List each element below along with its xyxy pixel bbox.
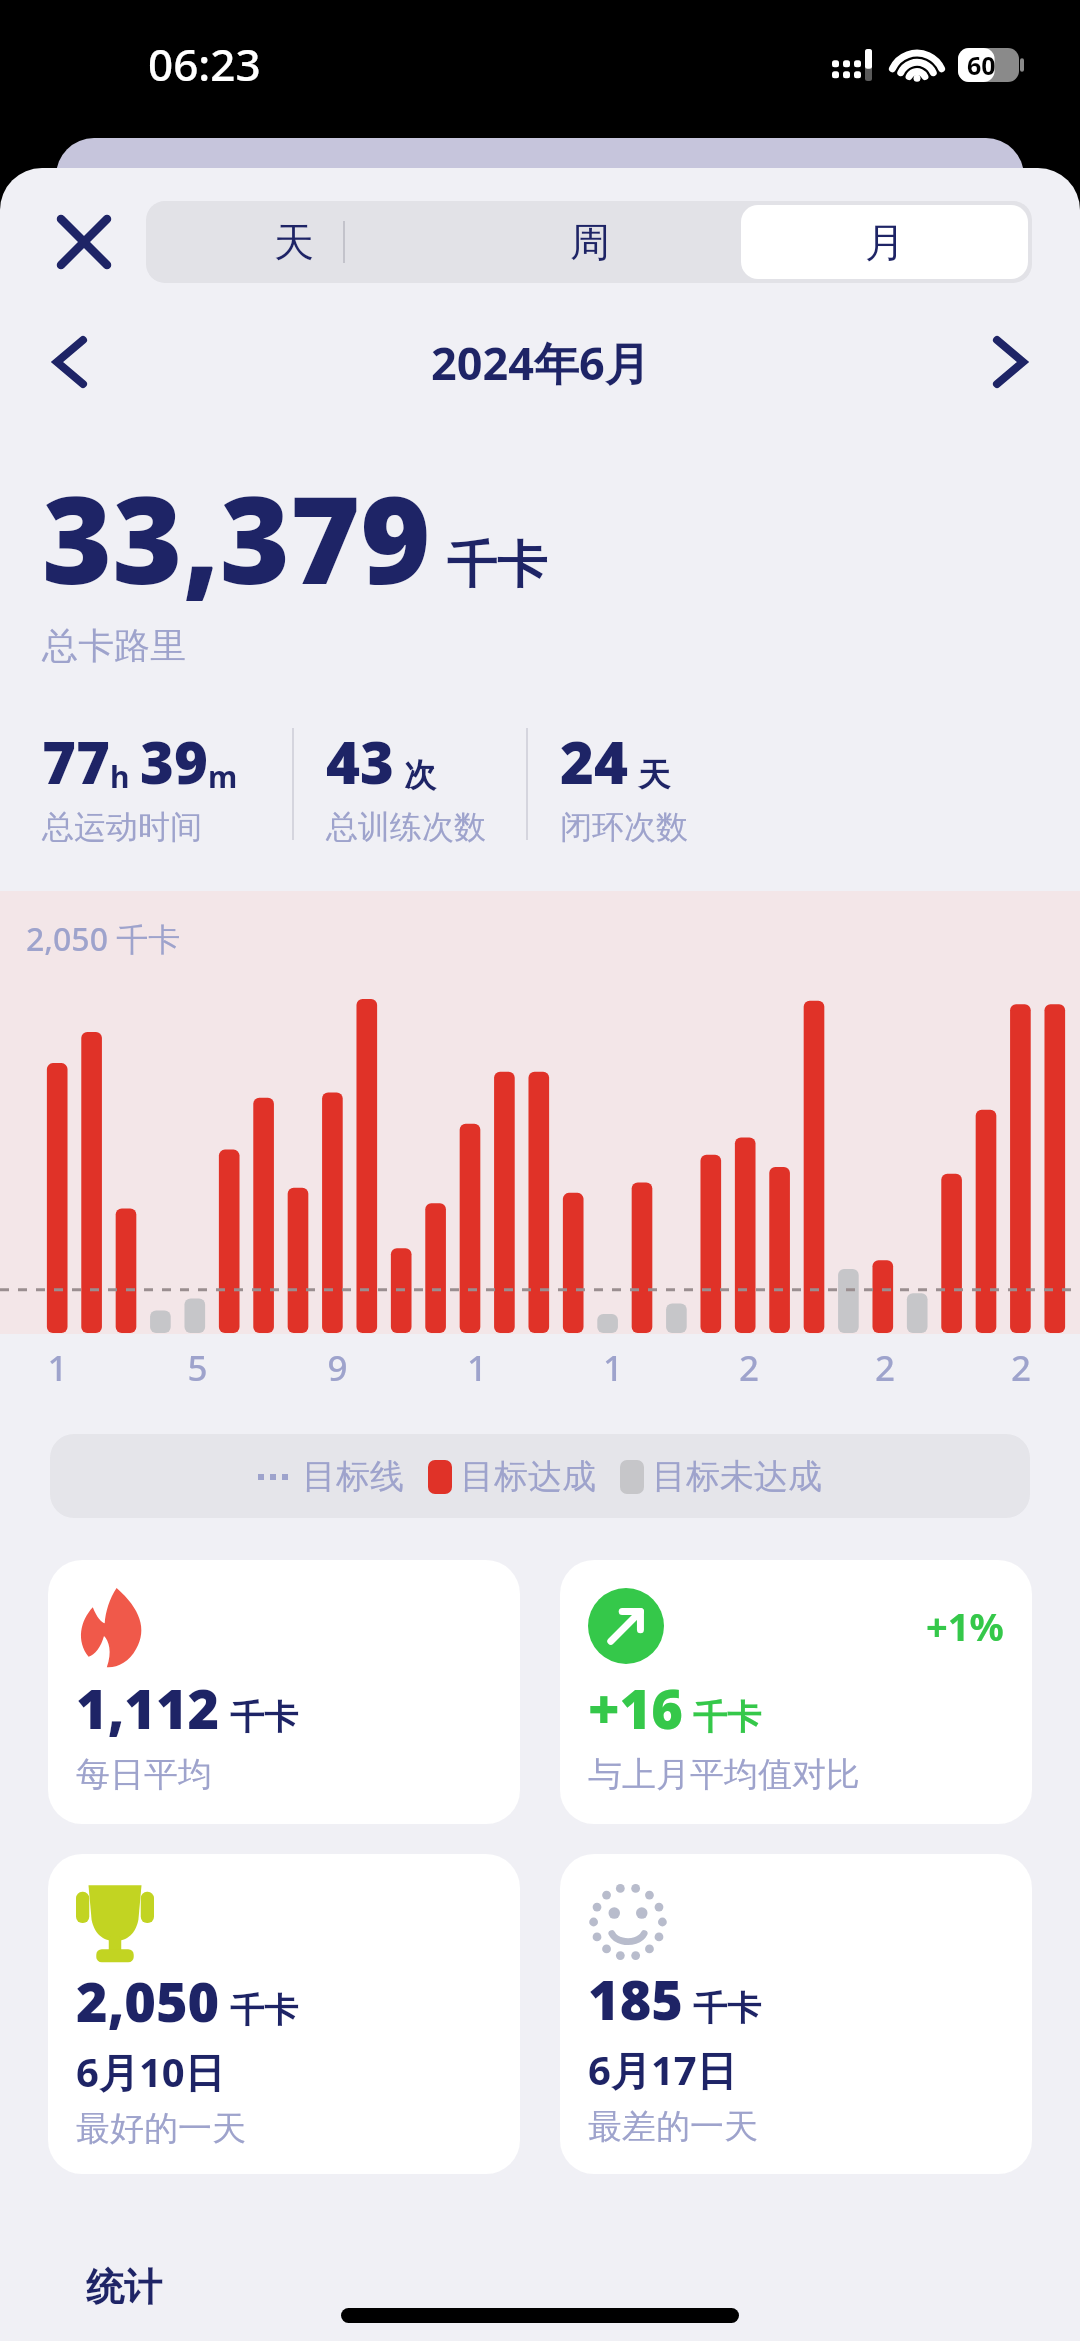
staticText: 6月17日 xyxy=(588,2042,737,2097)
button[interactable]: Next month xyxy=(970,322,1050,402)
staticText: h xyxy=(110,756,130,797)
button[interactable]: +1% xyxy=(560,1560,1032,1824)
staticText: 6月10日 xyxy=(76,2044,225,2099)
button[interactable]: 1,112 xyxy=(48,1560,520,1824)
button[interactable]: 2,050 xyxy=(48,1854,520,2174)
staticText: 最好的一天 xyxy=(76,2107,246,2146)
staticText: 千卡 xyxy=(693,1696,761,1739)
staticText: 闭环次数 xyxy=(560,807,688,847)
staticText: 77 xyxy=(42,722,110,801)
staticText: 185 xyxy=(588,1962,683,2036)
staticText: 月 xyxy=(865,217,905,267)
button[interactable]: 月 xyxy=(741,205,1028,279)
staticText: 每日平均 xyxy=(76,1753,212,1796)
button[interactable]: Close xyxy=(42,200,126,284)
button[interactable]: 目标线 xyxy=(50,1434,1030,1518)
staticText: 43 xyxy=(326,722,394,801)
staticText: 千卡 xyxy=(693,1987,761,2030)
staticText: 29 xyxy=(1004,1344,1038,1402)
staticText: 5 xyxy=(187,1344,208,1392)
staticText: 2,050 千卡 xyxy=(26,917,181,961)
button[interactable]: 天 xyxy=(150,205,438,279)
staticText: 目标线 xyxy=(302,1455,404,1498)
staticText: 总卡路里 xyxy=(42,623,186,668)
staticText: 17 xyxy=(596,1344,630,1402)
staticText: m xyxy=(208,756,238,797)
staticText: 千卡 xyxy=(230,1696,298,1739)
staticText: +1% xyxy=(926,1600,1004,1652)
staticText: +16 xyxy=(588,1671,683,1745)
staticText: 次 xyxy=(404,755,436,795)
staticText: 24 xyxy=(560,722,628,801)
staticText: 2,050 xyxy=(76,1964,220,2038)
staticText: 千卡 xyxy=(447,534,547,597)
staticText: 06:23 xyxy=(148,34,261,94)
staticText: 千卡 xyxy=(230,1989,298,2032)
staticText: 总训练次数 xyxy=(326,807,486,847)
staticText: 目标达成 xyxy=(460,1455,596,1498)
staticText: 统计 xyxy=(86,2263,162,2311)
button[interactable]: 周 xyxy=(446,205,733,279)
staticText: 周 xyxy=(570,217,610,267)
staticText: 39 xyxy=(140,722,208,801)
staticText: 33,379 xyxy=(42,456,431,619)
staticText: 天 xyxy=(638,755,670,795)
button[interactable]: 185 xyxy=(560,1854,1032,2174)
staticText: 9 xyxy=(327,1344,348,1392)
staticText: 21 xyxy=(732,1344,766,1402)
staticText: 25 xyxy=(868,1344,902,1402)
button[interactable]: Previous month xyxy=(30,322,110,402)
staticText: 与上月平均值对比 xyxy=(588,1753,860,1796)
staticText: 1 xyxy=(47,1344,68,1392)
staticText: 1,112 xyxy=(76,1671,220,1745)
staticText: 总运动时间 xyxy=(42,807,202,847)
staticText: 2024年6月 xyxy=(431,332,650,393)
staticText: 13 xyxy=(460,1344,494,1402)
staticText: 最差的一天 xyxy=(588,2105,758,2146)
staticText: 目标未达成 xyxy=(652,1455,822,1498)
staticText: 天 xyxy=(274,217,314,267)
staticText: 60 xyxy=(967,48,996,82)
